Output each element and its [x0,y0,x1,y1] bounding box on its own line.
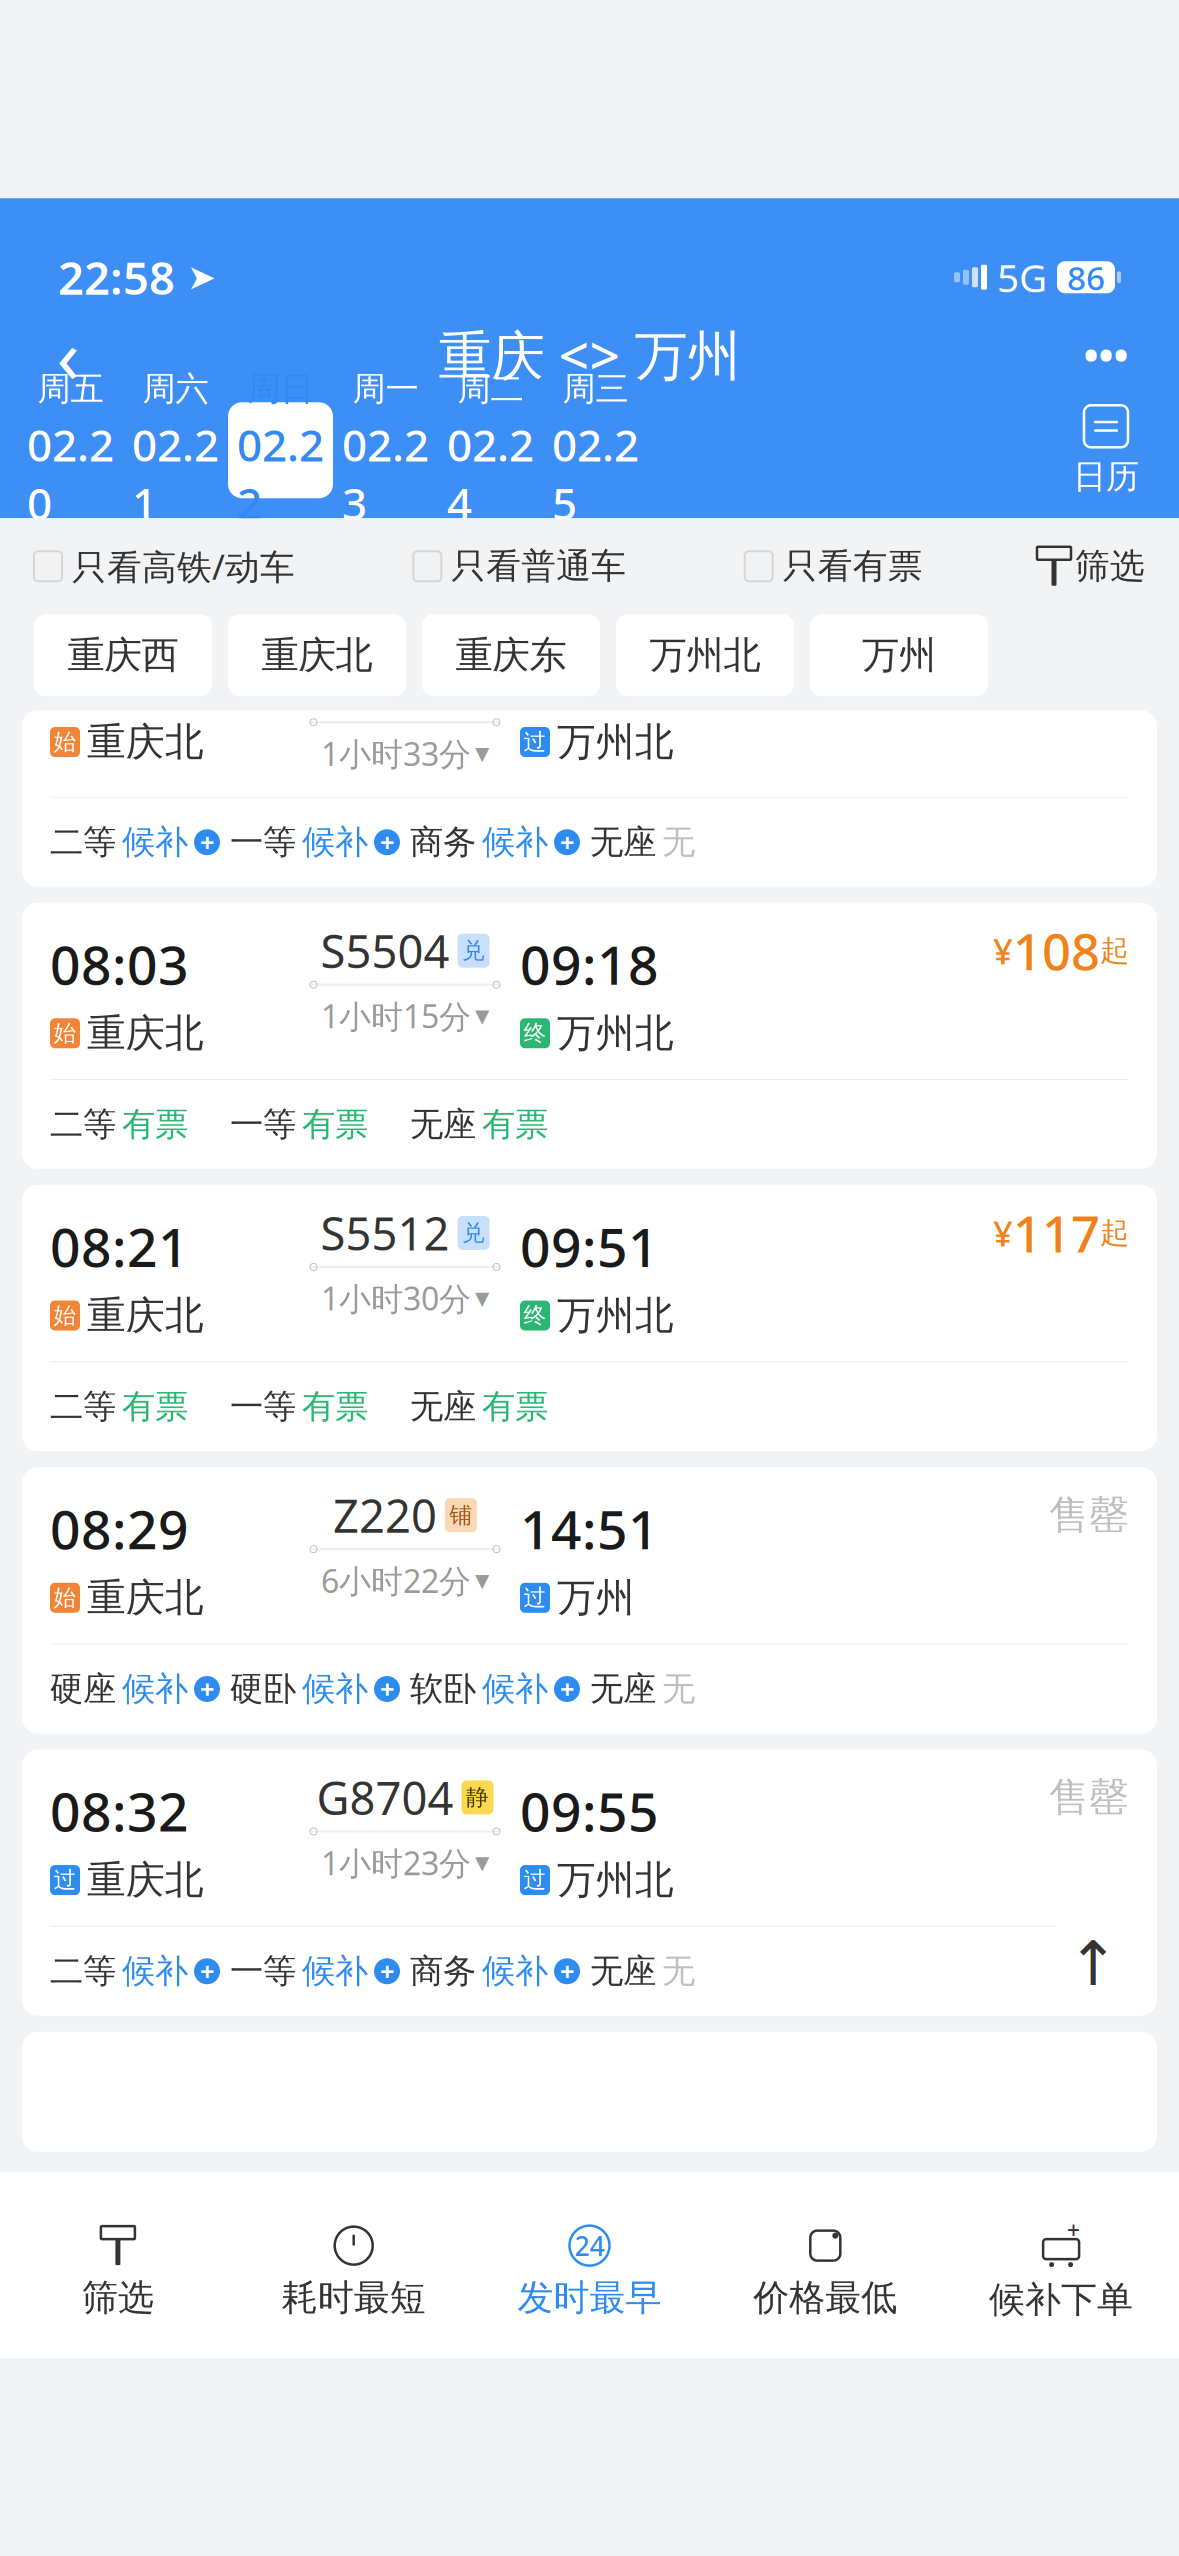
staticText: 重庆西 [67,632,178,678]
staticText: Z220 [333,1485,437,1545]
staticText: 无座 [590,1668,656,1709]
staticText: ••• [1083,328,1128,381]
staticText: ▼ [475,1005,489,1027]
button[interactable]: 重庆西 [34,614,212,696]
staticText: 无座 [590,822,656,863]
staticText: 09:18 [520,929,659,999]
staticText: 商务 [410,822,476,863]
staticText: 无座 [410,1104,476,1145]
staticText: 无座 [590,1951,656,1992]
staticText: 万州北 [557,1292,674,1339]
staticText: 无 [662,1668,695,1709]
button[interactable]: 始 [22,710,1157,887]
staticText: 02.22 [237,415,324,532]
staticText: 始 [53,1019,76,1047]
button[interactable]: 只看有票 [745,545,923,588]
button[interactable]: 周三 [543,402,648,498]
staticText: 02.20 [27,415,114,532]
staticText: 117 [1013,1199,1100,1267]
staticText: 兑 [462,937,485,965]
staticText: 重庆东 [455,632,566,678]
staticText: 过 [523,1584,546,1612]
staticText: 只看普通车 [451,545,626,588]
button[interactable]: 08:03 [22,903,1157,1169]
staticText: 二等 [50,1386,116,1427]
staticText: 重庆北 [87,1574,204,1621]
button[interactable]: 筛选 [0,2214,236,2330]
button[interactable]: 只看高铁/动车 [34,543,295,589]
button[interactable]: 24 [472,2214,707,2330]
button[interactable]: 重庆东 [422,614,600,696]
staticText: 售罄 [1049,1773,1129,1822]
button[interactable]: 08:21 [22,1185,1157,1451]
button[interactable]: 只看普通车 [413,545,626,588]
staticText: 候补 [122,1951,188,1992]
staticText: S5504 [320,921,449,981]
staticText: 有票 [122,1386,188,1427]
button[interactable]: 返回 [28,314,108,394]
button[interactable]: 万州北 [616,614,794,696]
staticText: 起 [1100,933,1129,969]
staticText: + [560,1672,574,1706]
button[interactable]: 回到顶部 [1041,1912,1145,2016]
staticText: 1小时15分 [321,995,471,1037]
staticText: 过 [53,1866,76,1894]
button[interactable]: 08:29 [22,1467,1157,1733]
staticText: 09:51 [520,1211,659,1282]
staticText: 02.25 [552,415,639,532]
staticText: 02.21 [132,415,219,532]
button[interactable]: 重庆北 [228,614,406,696]
staticText: 周五 [37,368,103,409]
staticText: ¥ [993,1210,1013,1256]
staticText: 筛选 [82,2276,154,2320]
button[interactable]: 周六 [123,402,228,498]
staticText: + [200,825,214,859]
button[interactable]: 筛选 [1041,545,1145,588]
staticText: 筛选 [1075,545,1145,588]
staticText: 86 [1067,255,1105,299]
staticText: + [380,825,394,859]
staticText: 万州 [862,632,936,678]
button[interactable]: 价格最低 [707,2214,943,2330]
staticText: 重庆北 [87,718,204,766]
staticText: 二等 [50,1104,116,1145]
staticText: 周二 [457,368,523,409]
staticText: + [380,1672,394,1706]
button[interactable]: 08:32 [22,1749,1157,2016]
staticText: 始 [53,728,76,756]
staticText: 重庆北 [261,632,372,678]
staticText: 过 [523,1866,546,1894]
staticText: ▼ [475,743,489,764]
staticText: 08:21 [50,1211,189,1282]
button[interactable]: 日历 [1051,400,1161,500]
staticText: 有票 [302,1386,368,1427]
staticText: 起 [1100,1215,1129,1251]
staticText: 软卧 [410,1668,476,1709]
staticText: 108 [1013,917,1100,984]
staticText: 价格最低 [753,2276,897,2320]
staticText: + [200,1672,214,1706]
staticText: 发时最早 [517,2276,661,2320]
button[interactable]: 更多 [1061,314,1151,394]
staticText: 一等 [230,822,296,863]
staticText: 02.23 [342,415,429,532]
staticText: 6小时22分 [321,1559,471,1602]
staticText: 候补 [122,822,188,863]
staticText: + [1067,2215,1080,2245]
staticText: 过 [523,728,546,756]
staticText: 周日 [247,368,313,409]
staticText: 硬卧 [230,1668,296,1709]
staticText: 周三 [562,368,628,409]
button[interactable]: 周五 [18,402,123,498]
button[interactable]: + [943,2212,1179,2332]
staticText: 始 [53,1584,76,1612]
staticText: ▼ [475,1570,489,1591]
button[interactable]: 耗时最短 [236,2214,472,2330]
button[interactable]: 万州 [810,614,988,696]
button[interactable]: 周日 [228,402,333,498]
button[interactable]: 周一 [333,402,438,498]
staticText: 候补 [302,1951,368,1992]
button[interactable]: 周二 [438,402,543,498]
staticText: 有票 [482,1386,548,1427]
staticText: 二等 [50,1951,116,1992]
